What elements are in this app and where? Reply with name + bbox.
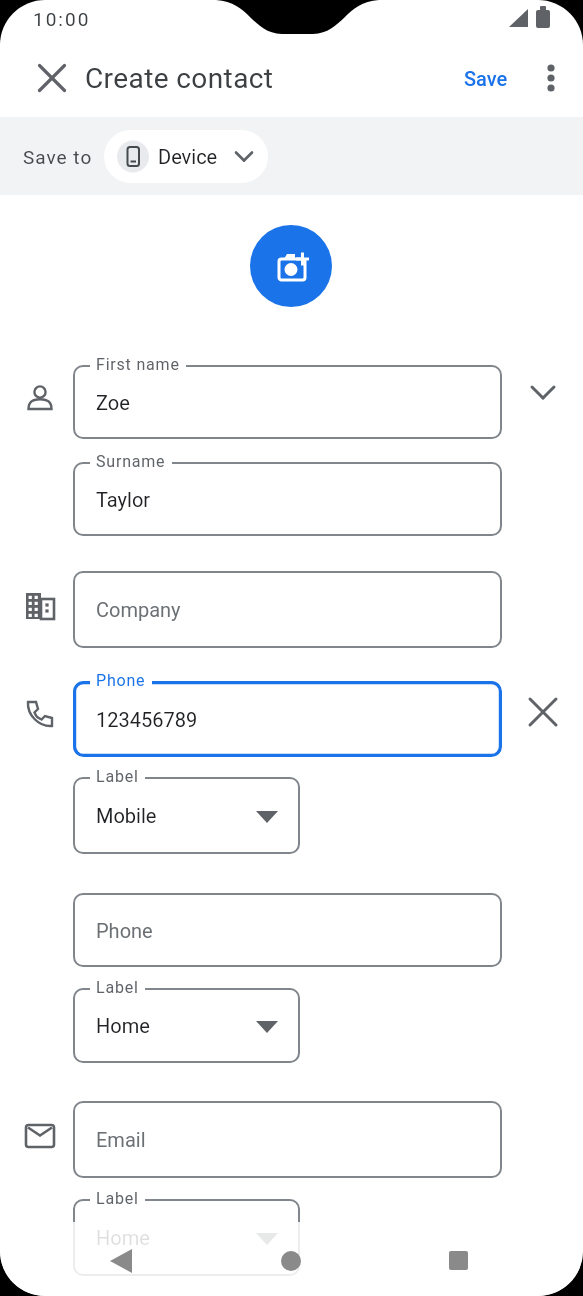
staticText: Email: [96, 1128, 146, 1151]
button[interactable]: Home: [73, 1199, 300, 1276]
button[interactable]: [436, 1239, 480, 1283]
staticText: Mobile: [96, 804, 157, 827]
staticText: Phone: [96, 919, 153, 942]
staticText: First name: [96, 355, 180, 374]
button[interactable]: Company: [73, 571, 502, 648]
staticText: Surname: [96, 452, 166, 471]
staticText: Home: [96, 1014, 150, 1037]
button[interactable]: [250, 225, 332, 307]
button[interactable]: Mobile: [73, 777, 300, 854]
staticText: Device: [158, 145, 218, 168]
staticText: Save: [464, 67, 508, 90]
staticText: Label: [96, 978, 139, 997]
button[interactable]: Email: [73, 1101, 502, 1178]
button[interactable]: Device: [104, 130, 268, 183]
staticText: Save to: [23, 146, 93, 168]
button[interactable]: Phone: [73, 893, 502, 967]
button[interactable]: [98, 1239, 142, 1283]
staticText: Label: [96, 767, 139, 786]
button[interactable]: [30, 56, 74, 100]
button[interactable]: [521, 690, 565, 734]
staticText: 10:00: [33, 8, 91, 30]
staticText: Phone: [96, 671, 146, 690]
button[interactable]: [533, 58, 571, 98]
staticText: Zoe: [96, 391, 130, 414]
button[interactable]: Zoe: [73, 365, 502, 439]
staticText: Company: [96, 598, 181, 621]
button[interactable]: [269, 1239, 313, 1283]
button[interactable]: Home: [73, 988, 300, 1063]
staticText: 123456789: [96, 708, 198, 731]
staticText: Label: [96, 1189, 139, 1208]
button[interactable]: [521, 373, 565, 417]
staticText: Create contact: [85, 62, 274, 95]
staticText: Taylor: [96, 488, 151, 511]
button[interactable]: Save: [448, 58, 524, 98]
button[interactable]: Taylor: [73, 462, 502, 536]
button[interactable]: 123456789: [73, 681, 502, 757]
staticText: Home: [96, 1226, 150, 1249]
